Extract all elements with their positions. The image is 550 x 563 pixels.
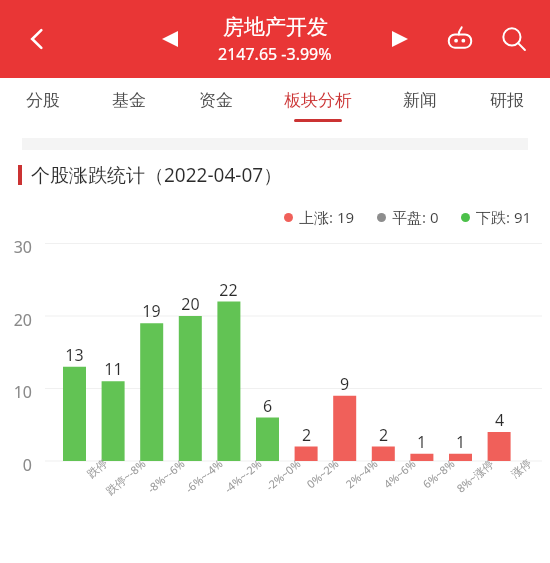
- staticText: 资金: [199, 90, 233, 111]
- staticText: 跌停~-8%: [102, 456, 148, 498]
- staticText: 涨停: [508, 456, 534, 481]
- staticText: 20: [173, 293, 208, 315]
- button[interactable]: Back: [14, 16, 60, 62]
- staticText: 2: [366, 424, 401, 446]
- staticText: 13: [57, 344, 92, 366]
- staticText: 30: [0, 236, 32, 258]
- staticText: 板块分析: [284, 90, 352, 111]
- staticText: 上涨: 19: [299, 207, 355, 227]
- staticText: 1: [443, 431, 478, 453]
- staticText: 4%~6%: [380, 456, 418, 492]
- staticText: 2: [289, 424, 324, 446]
- staticText: 平盘: 0: [392, 207, 439, 227]
- button[interactable]: 分股: [0, 78, 86, 138]
- staticText: 基金: [112, 90, 146, 111]
- staticText: 22: [211, 279, 246, 301]
- button[interactable]: Next: [380, 19, 420, 59]
- staticText: 6: [250, 395, 285, 417]
- button[interactable]: 基金: [86, 78, 172, 138]
- staticText: 0%~2%: [303, 456, 341, 492]
- staticText: 11: [96, 358, 131, 380]
- staticText: 个股涨跌统计（2022-04-07）: [31, 162, 283, 188]
- button[interactable]: 板块分析: [259, 78, 376, 138]
- button[interactable]: Assistant: [438, 17, 482, 61]
- staticText: 20: [0, 309, 32, 331]
- staticText: 2147.65 -3.99%: [218, 43, 332, 65]
- button[interactable]: 资金: [172, 78, 259, 138]
- staticText: -8%~-6%: [143, 456, 187, 496]
- button[interactable]: Previous: [150, 19, 190, 59]
- button[interactable]: 新闻: [376, 78, 463, 138]
- staticText: 8%~涨停: [453, 456, 496, 496]
- staticText: 1: [404, 431, 439, 453]
- staticText: 2%~4%: [342, 456, 380, 492]
- staticText: -4%~-2%: [220, 456, 264, 496]
- staticText: 0: [0, 454, 32, 476]
- staticText: 19: [134, 300, 169, 322]
- staticText: 4: [482, 409, 517, 431]
- staticText: 10: [0, 381, 32, 403]
- staticText: -6%~-4%: [181, 456, 225, 496]
- staticText: 跌停: [84, 456, 110, 481]
- staticText: 新闻: [403, 90, 437, 111]
- staticText: 研报: [490, 90, 524, 111]
- staticText: 6%~8%: [419, 456, 457, 492]
- staticText: 下跌: 91: [476, 207, 532, 227]
- staticText: -2%~0%: [262, 456, 303, 494]
- button[interactable]: Search: [492, 17, 536, 61]
- button[interactable]: 研报: [463, 78, 550, 138]
- staticText: 9: [327, 373, 362, 395]
- staticText: 分股: [26, 90, 60, 111]
- staticText: 房地产开发: [223, 14, 328, 40]
